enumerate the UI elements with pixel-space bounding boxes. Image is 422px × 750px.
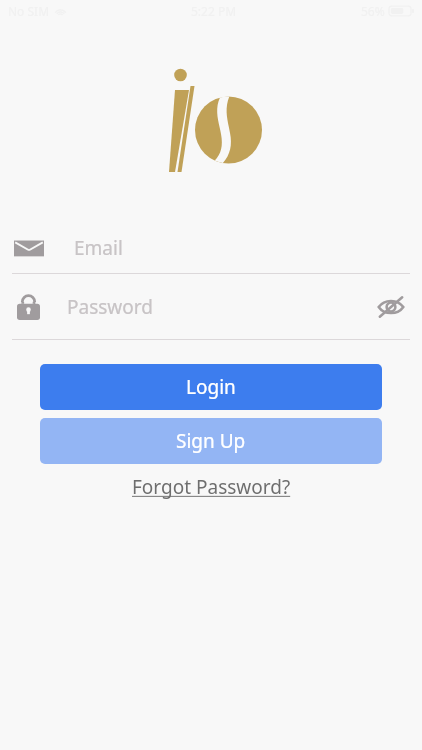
staticText: Login (186, 374, 236, 400)
staticText: Email (74, 235, 123, 261)
button[interactable]: Sign Up (40, 418, 382, 464)
button[interactable]: Show password (374, 290, 408, 324)
staticText: Forgot Password? (132, 474, 291, 500)
staticText: Sign Up (176, 428, 246, 454)
button[interactable]: Forgot Password? (126, 472, 297, 502)
button[interactable]: Email (0, 222, 422, 273)
button[interactable]: Password (0, 274, 422, 339)
staticText: Password (67, 294, 153, 320)
button[interactable]: Login (40, 364, 382, 410)
